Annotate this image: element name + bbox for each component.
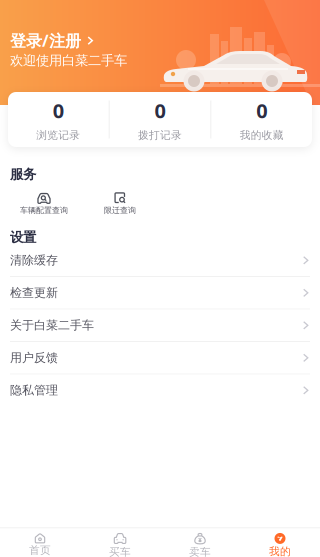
staticText: 欢迎使用白菜二手车 xyxy=(10,52,127,69)
button[interactable]: 限迁查询 xyxy=(82,191,158,215)
button[interactable]: 检查更新 xyxy=(0,277,320,310)
staticText: 设置 xyxy=(10,229,36,246)
button[interactable]: 登录/注册 xyxy=(10,30,94,51)
button[interactable]: 0 xyxy=(211,97,312,142)
staticText: 0 xyxy=(256,97,267,124)
button[interactable]: 买车 xyxy=(80,528,160,557)
staticText: 我的收藏 xyxy=(240,129,284,142)
button[interactable]: 车辆配置查询 xyxy=(6,191,82,215)
staticText: 买车 xyxy=(109,545,131,557)
staticText: 0 xyxy=(53,97,64,124)
button[interactable]: 清除缓存 xyxy=(0,245,320,277)
staticText: 关于白菜二手车 xyxy=(10,318,94,333)
staticText: 我的 xyxy=(269,545,291,557)
button[interactable]: 0 xyxy=(110,97,210,142)
button[interactable]: 隐私管理 xyxy=(0,375,320,407)
staticText: 车辆配置查询 xyxy=(20,205,68,215)
button[interactable]: 我的 xyxy=(240,529,320,557)
staticText: 检查更新 xyxy=(10,285,58,300)
staticText: 拨打记录 xyxy=(138,129,182,142)
staticText: 卖车 xyxy=(189,545,211,557)
staticText: 服务 xyxy=(10,166,36,182)
staticText: 浏览记录 xyxy=(36,129,80,142)
button[interactable]: 关于白菜二手车 xyxy=(0,310,320,342)
button[interactable]: 首页 xyxy=(0,530,80,557)
staticText: 清除缓存 xyxy=(10,253,58,268)
button[interactable]: 用户反馈 xyxy=(0,342,320,375)
staticText: 限迁查询 xyxy=(104,205,136,215)
staticText: 用户反馈 xyxy=(10,350,58,365)
staticText: 0 xyxy=(154,97,165,124)
staticText: 首页 xyxy=(29,544,51,557)
button[interactable]: 0 xyxy=(8,97,109,142)
staticText: 隐私管理 xyxy=(10,383,58,398)
staticText: 登录/注册 xyxy=(10,30,81,51)
button[interactable]: 卖车 xyxy=(160,528,240,557)
